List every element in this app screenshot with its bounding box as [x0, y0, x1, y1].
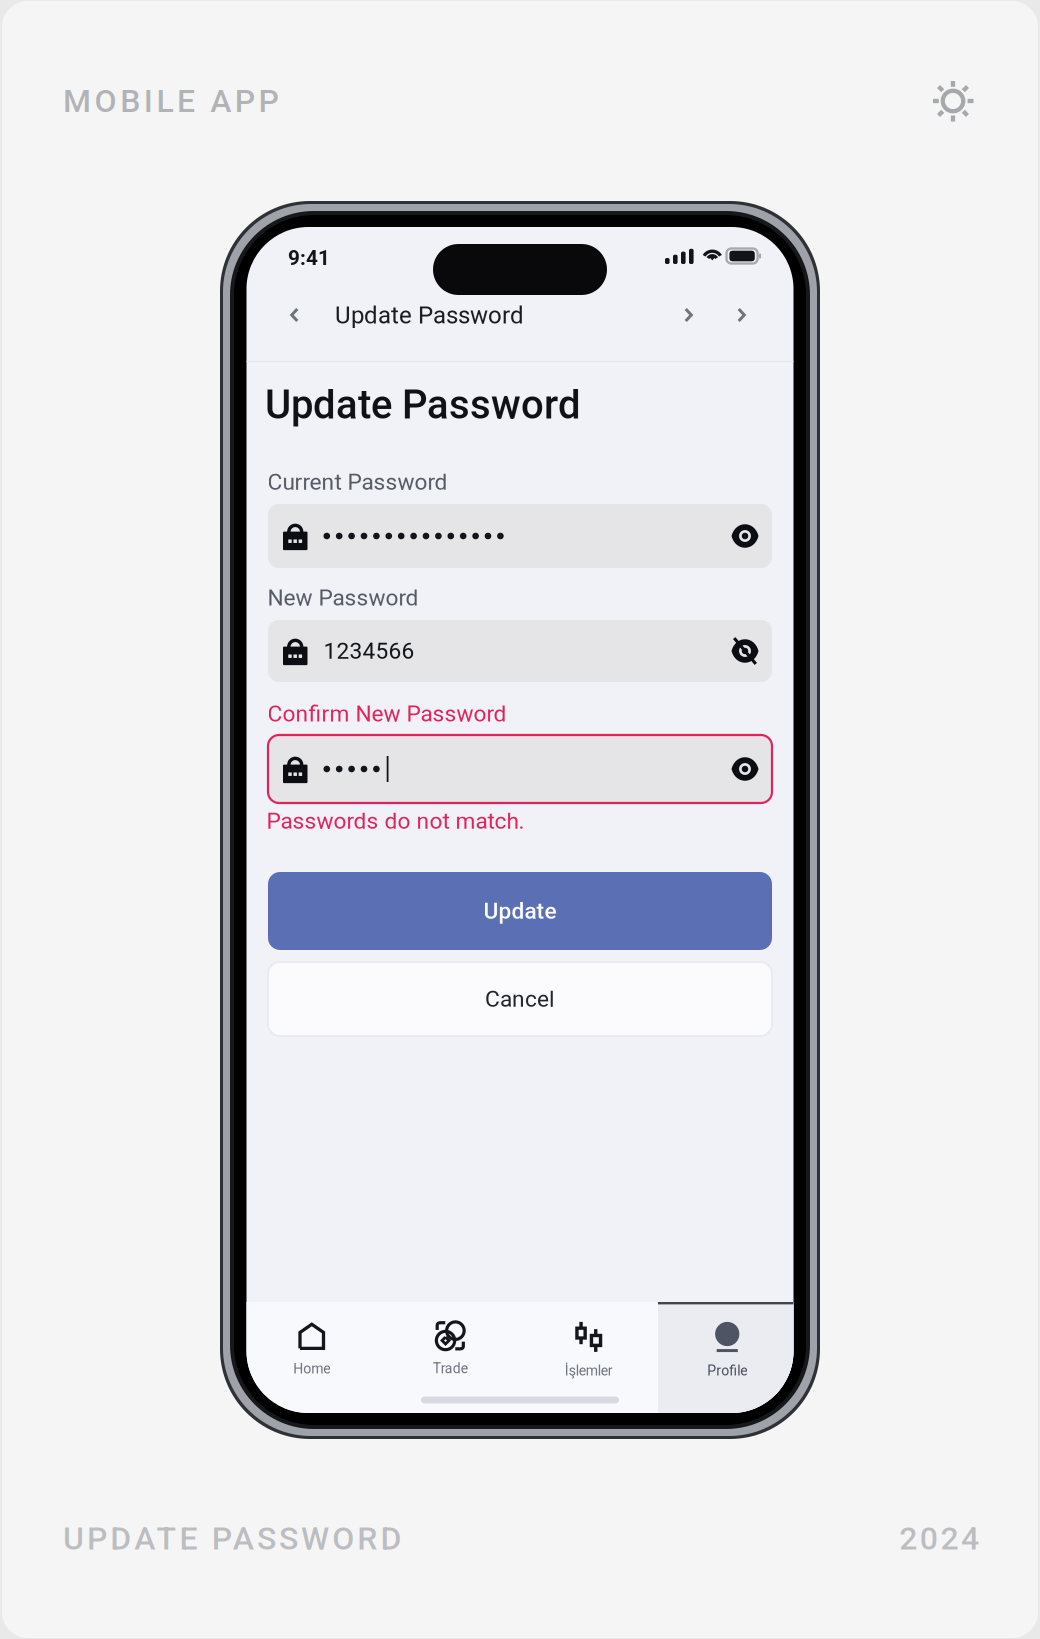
staticText: 9:41 [288, 246, 330, 270]
staticText: 1234566 [323, 638, 414, 664]
button[interactable]: Back [277, 293, 311, 337]
staticText: New Password [267, 584, 418, 611]
staticText: Confirm New Password [267, 700, 506, 727]
staticText: İşlemler [565, 1362, 613, 1379]
button[interactable]: Toggle appearance [925, 73, 981, 129]
staticText: MOBILE APP [63, 82, 278, 120]
button[interactable]: Forward [671, 293, 705, 337]
staticText: Trade [433, 1360, 468, 1377]
button[interactable]: Profile [658, 1302, 796, 1413]
staticText: Profile [707, 1362, 747, 1379]
staticText: Passwords do not match. [266, 808, 524, 834]
button[interactable]: Next [724, 293, 758, 337]
button[interactable]: Trade [381, 1302, 519, 1413]
button[interactable]: İşlemler [519, 1302, 658, 1413]
staticText: Update [483, 898, 556, 924]
staticText: 2024 [899, 1520, 979, 1557]
staticText: Current Password [267, 469, 447, 495]
staticText: Update Password [335, 301, 524, 329]
staticText: UPDATE PASSWORD [63, 1520, 401, 1557]
button[interactable]: Cancel [268, 962, 772, 1036]
button[interactable]: Show password [718, 504, 772, 568]
staticText: Update Password [265, 381, 581, 428]
button[interactable]: Update [268, 872, 772, 950]
button[interactable]: Show password [718, 735, 772, 803]
staticText: Cancel [485, 986, 555, 1012]
button[interactable]: Home [242, 1302, 381, 1413]
button[interactable]: Hide password [718, 620, 772, 682]
staticText: Home [293, 1360, 330, 1377]
